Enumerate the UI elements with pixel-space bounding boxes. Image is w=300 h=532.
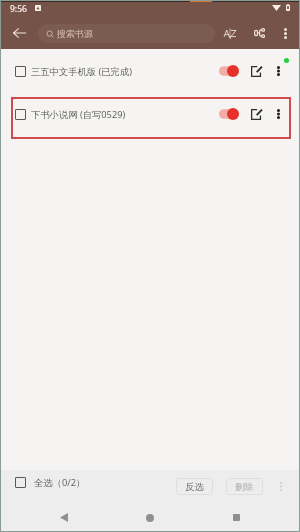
button[interactable]: Enable source <box>212 104 242 124</box>
staticText: 下书小说网 (自写0529) <box>31 108 126 121</box>
button[interactable]: More options <box>275 17 295 49</box>
button[interactable]: 全选（0/2） <box>15 476 86 489</box>
button[interactable]: Sort alphabetically <box>218 17 242 49</box>
button[interactable]: Row menu <box>271 61 286 81</box>
button[interactable]: 下书小说网 (自写0529) <box>15 96 300 132</box>
button[interactable]: More actions <box>274 476 288 496</box>
staticText: 搜索书源 <box>57 28 93 39</box>
button[interactable]: Group sources <box>247 17 271 49</box>
button[interactable]: Back <box>4 17 34 49</box>
staticText: 全选（0/2） <box>34 476 86 489</box>
button[interactable]: Edit source <box>246 106 266 122</box>
button[interactable]: Enable source <box>212 61 242 81</box>
button[interactable]: 删除 <box>226 478 263 495</box>
staticText: 9:56 <box>10 3 27 15</box>
button[interactable]: Row menu <box>271 104 286 124</box>
button[interactable]: Recent apps <box>214 503 258 532</box>
staticText: 三五中文手机版 (已完成) <box>31 65 132 78</box>
staticText: 删除 <box>235 481 254 493</box>
button[interactable]: Edit source <box>246 63 266 79</box>
staticText: 反选 <box>185 481 204 493</box>
button[interactable]: Home <box>128 503 172 532</box>
button[interactable]: Back <box>42 503 86 532</box>
button[interactable]: 反选 <box>176 478 213 495</box>
button[interactable]: 搜索书源 <box>38 24 215 43</box>
button[interactable]: 三五中文手机版 (已完成) <box>15 53 300 89</box>
